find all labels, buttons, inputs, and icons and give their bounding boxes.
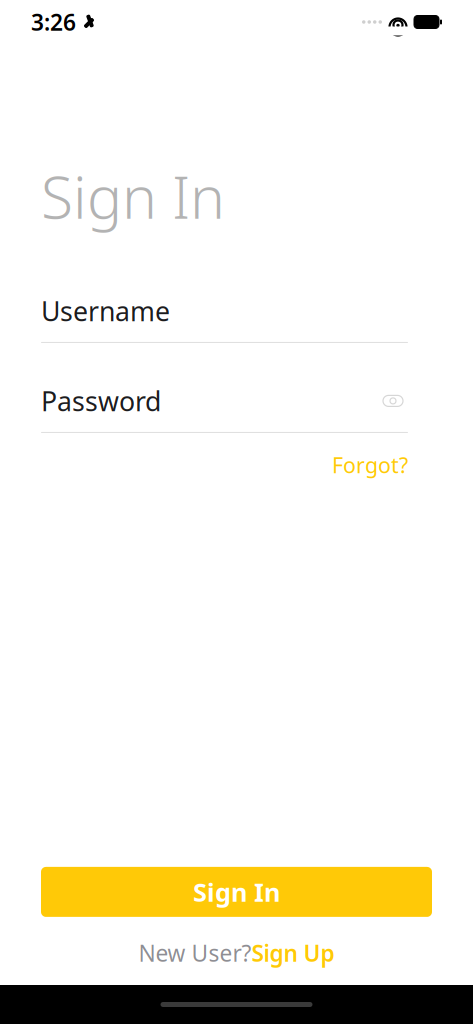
staticText: 3:26 [31,7,76,37]
staticText: Sign In [193,875,280,909]
staticText: Sign In [41,157,225,235]
staticText: Password [41,383,161,419]
button[interactable]: Forgot? [332,446,408,484]
button[interactable]: Show password [378,388,408,414]
button[interactable]: Sign In [41,867,432,917]
staticText: Forgot? [332,451,408,479]
button[interactable]: Sign Up [251,938,334,968]
staticText: New User? [138,938,251,968]
staticText: Username [41,293,170,329]
staticText: Sign Up [251,938,334,968]
